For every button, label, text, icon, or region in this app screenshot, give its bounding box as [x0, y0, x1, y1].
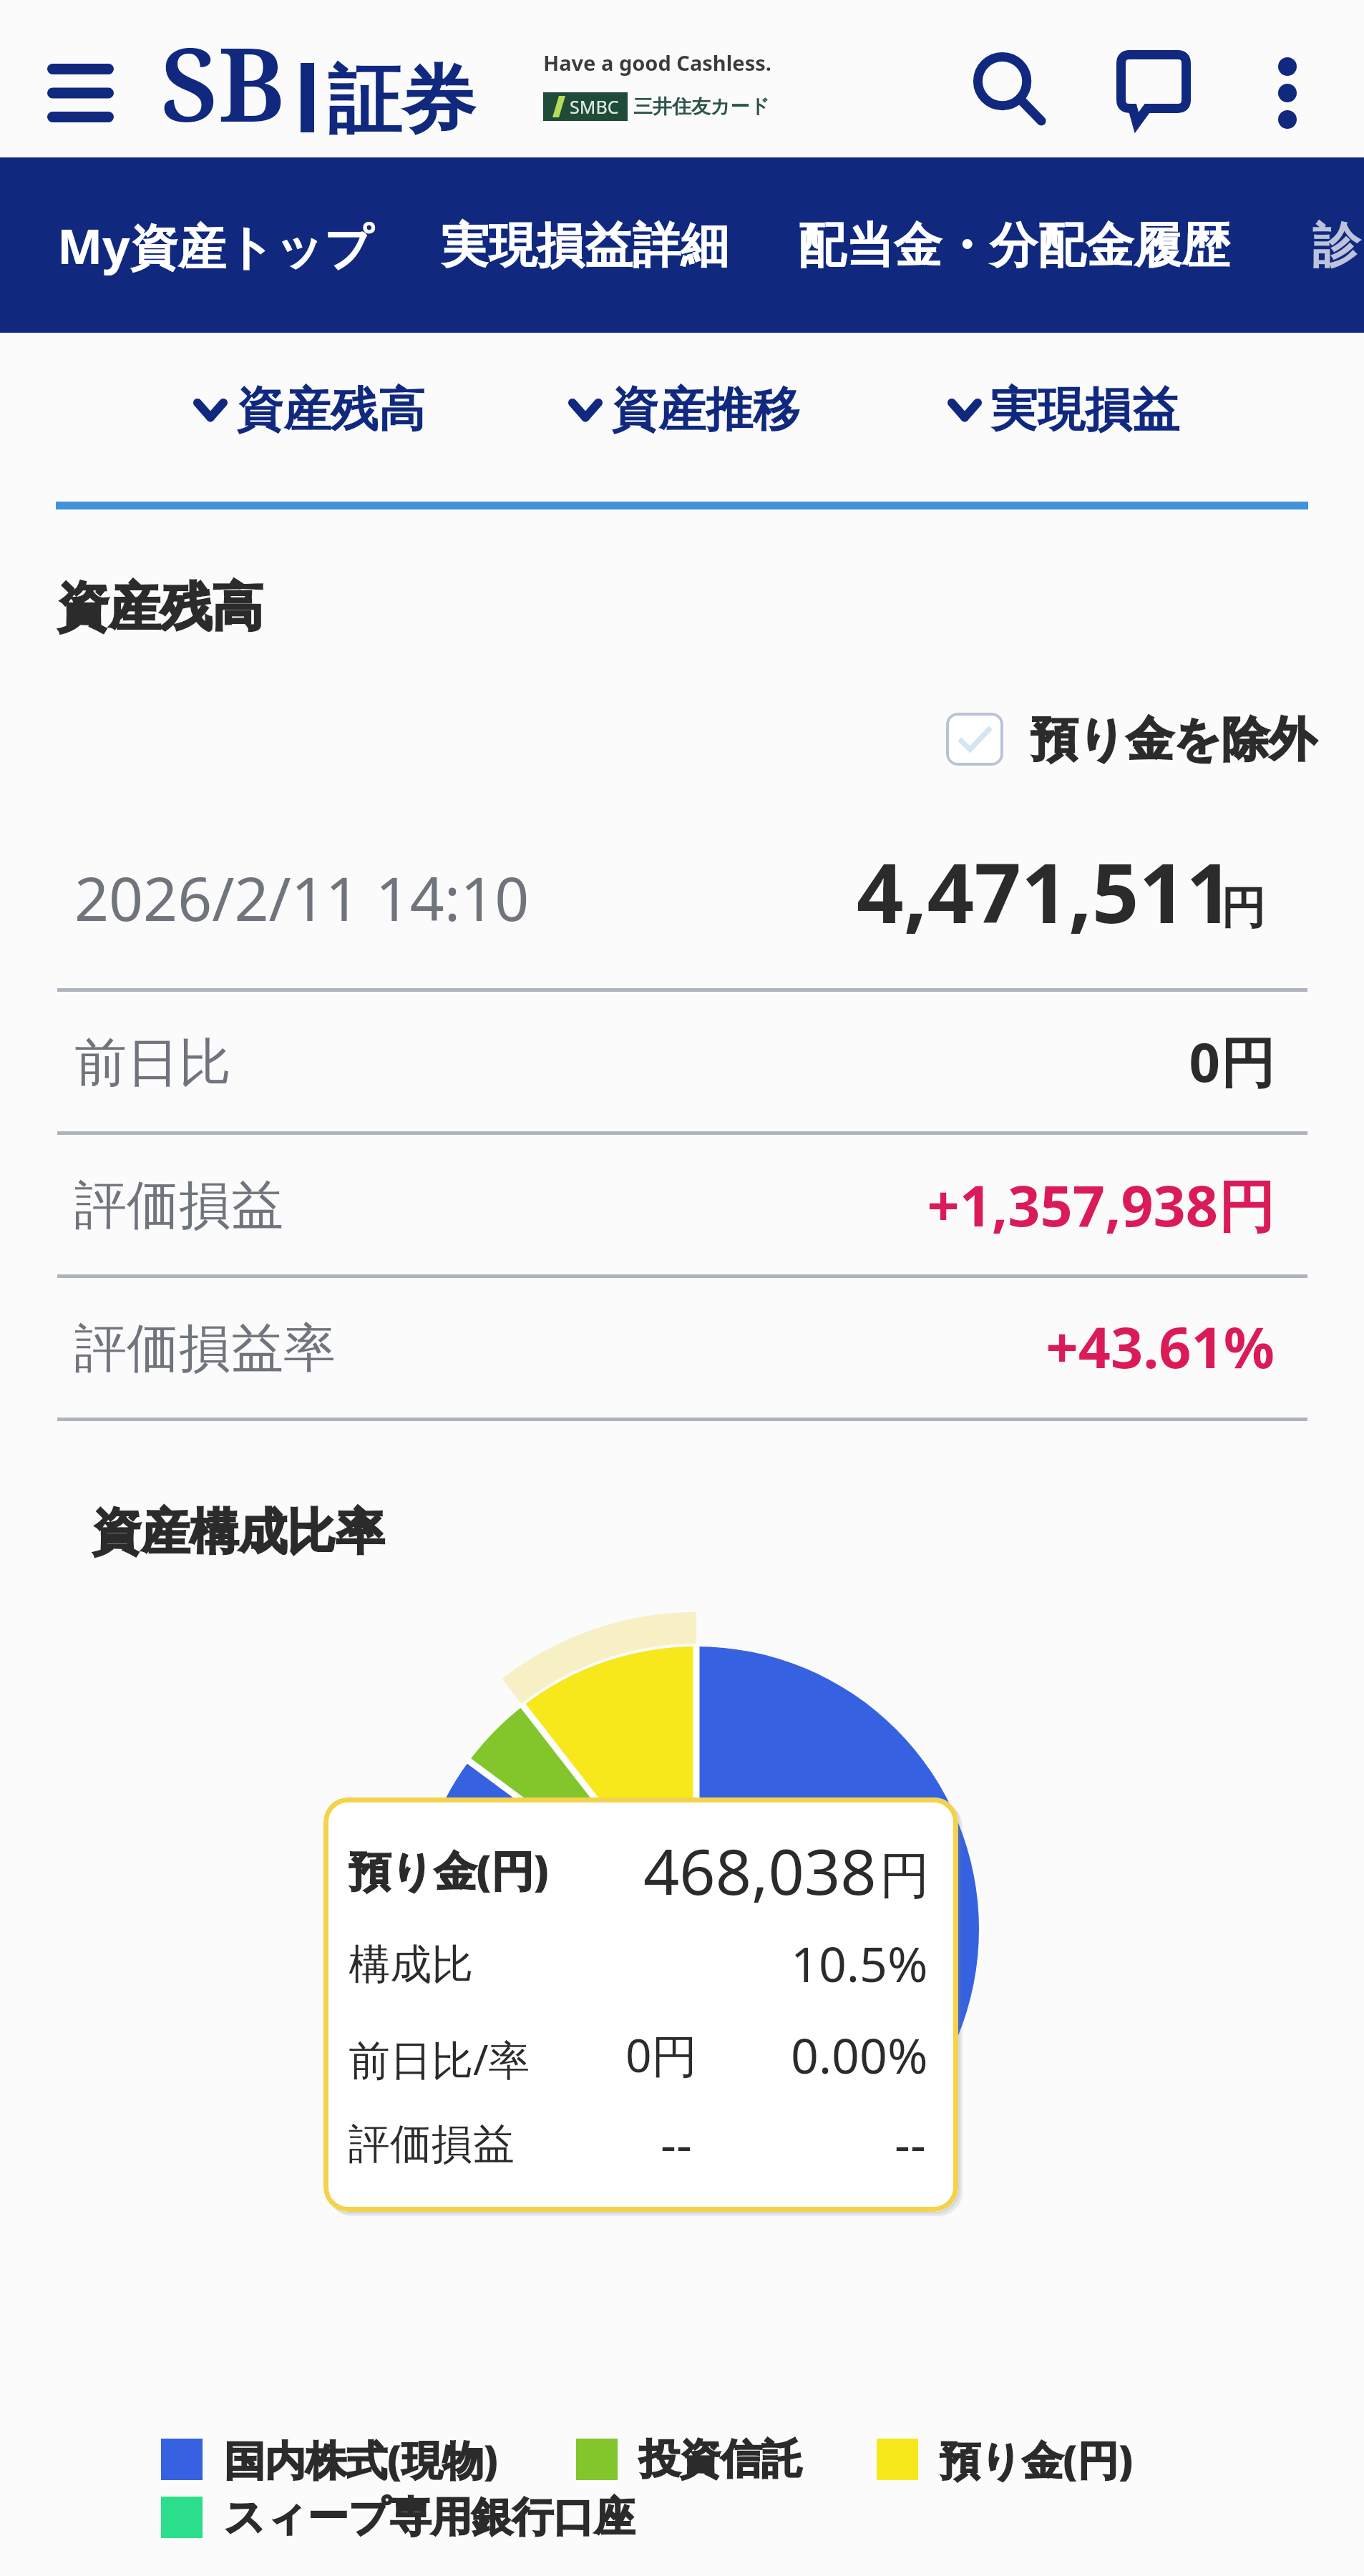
staticText: My資産トップ [57, 213, 374, 278]
staticText: 預り金を除外 [1031, 710, 1317, 769]
button[interactable]: 資産推移 [568, 370, 800, 449]
staticText: 円 [880, 1845, 930, 1908]
button[interactable]: My資産トップ [57, 157, 374, 333]
staticText: 実現損益 [990, 380, 1179, 439]
staticText: 資産推移 [611, 380, 800, 439]
staticText: 2026/2/11 14:10 [74, 857, 530, 938]
staticText: 4,471,511 [857, 835, 1234, 947]
staticText: 前日比 [74, 1030, 231, 1096]
button[interactable]: 診 [1312, 157, 1360, 333]
staticText: 468,038 [643, 1828, 877, 1913]
staticText: 評価損益 [74, 1173, 283, 1239]
button[interactable]: Search [948, 28, 1070, 150]
button[interactable]: SB [160, 13, 447, 151]
staticText: -- [895, 2110, 926, 2177]
staticText: 評価損益率 [74, 1316, 336, 1382]
button[interactable]: 配当金・分配金履歴 [798, 157, 1229, 333]
staticText: 10.5% [791, 1930, 928, 1996]
staticText: 0円 [1189, 1024, 1275, 1098]
staticText: 実現損益詳細 [441, 215, 729, 275]
staticText: 評価損益 [349, 2118, 515, 2170]
button[interactable]: More options [1234, 39, 1341, 147]
button[interactable]: 実現損益 [948, 370, 1179, 449]
staticText: SMBC [570, 94, 619, 119]
staticText: +1,357,938円 [927, 1166, 1275, 1244]
staticText: 預り金(円) [349, 1841, 549, 1899]
staticText: +43.61% [1046, 1308, 1275, 1385]
staticText: 資産残高 [236, 380, 425, 439]
staticText: 証券 [328, 54, 475, 147]
button[interactable]: Messages [1093, 28, 1214, 150]
staticText: 前日比/率 [349, 2031, 530, 2087]
staticText: 配当金・分配金履歴 [798, 215, 1229, 275]
button[interactable]: 預り金を除外 [946, 698, 1317, 781]
staticText: 投資信託 [639, 2434, 802, 2485]
staticText: 資産残高 [57, 575, 263, 640]
staticText: 構成比 [349, 1938, 473, 1991]
button[interactable]: Menu [29, 39, 132, 147]
staticText: スィープ専用銀行口座 [224, 2492, 635, 2543]
staticText: -- [661, 2110, 692, 2177]
button[interactable]: Mitsui Sumitomo Card advertisement [543, 49, 771, 121]
staticText: 診 [1312, 215, 1360, 275]
button[interactable]: 実現損益詳細 [441, 157, 729, 333]
staticText: 0.00% [791, 2021, 928, 2088]
staticText: SB [160, 13, 286, 151]
staticText: 資産構成比率 [92, 1502, 384, 1563]
staticText: 円 [1221, 880, 1265, 936]
staticText: Have a good Cashless. [543, 49, 771, 77]
button[interactable]: 資産残高 [193, 370, 425, 449]
staticText: 0円 [625, 2024, 698, 2086]
staticText: 預り金(円) [940, 2431, 1134, 2487]
staticText: 三井住友カード [633, 94, 770, 119]
staticText: 国内株式(現物) [224, 2431, 498, 2487]
